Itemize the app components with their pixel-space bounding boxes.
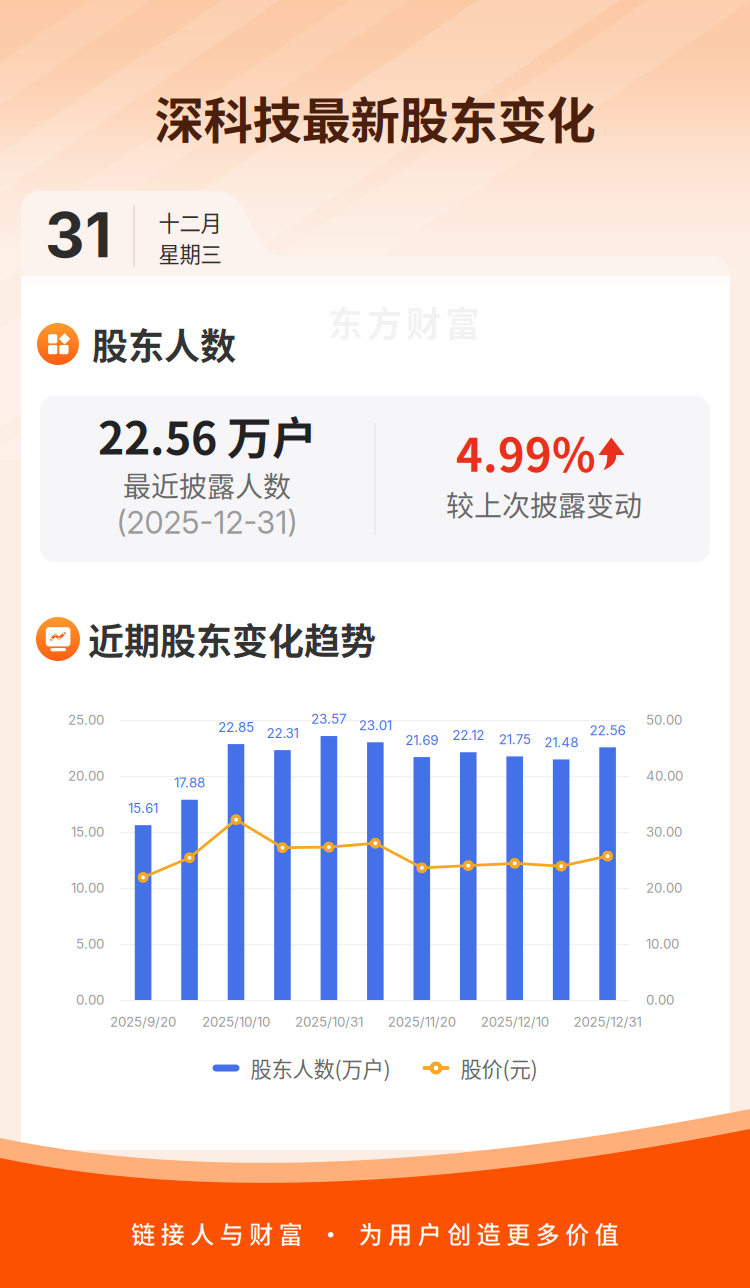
staticText: 2025/12/31 [574,1014,642,1030]
staticText: 5.00 [76,936,104,952]
staticText: 0.00 [646,992,674,1008]
staticText: 十二月 [158,207,221,237]
staticText: 15.00 [71,824,104,840]
staticText: 10.00 [71,880,104,896]
staticText: 20.00 [646,880,682,896]
staticText: 最近披露人数 [123,465,291,505]
staticText: 深科技最新股东变化 [154,81,595,153]
staticText: 17.88 [174,775,205,791]
staticText: 31 [45,198,111,272]
staticText: 22.56 [590,722,626,738]
staticText: 21.75 [499,731,531,747]
staticText: (2025-12-31) [116,504,297,541]
staticText: 15.61 [128,800,158,816]
staticText: 50.00 [646,712,682,728]
staticText: 2025/10/31 [295,1014,363,1030]
staticText: 近期股东变化趋势 [88,613,376,665]
staticText: 21.69 [405,732,438,748]
staticText: 30.00 [646,824,682,840]
staticText: 23.01 [359,717,392,733]
staticText: 10.00 [646,936,679,952]
staticText: 22.31 [266,725,298,741]
staticText: 40.00 [646,768,683,784]
staticText: 4.99% [456,419,596,485]
staticText: 2025/9/20 [110,1014,176,1030]
staticText: 星期三 [158,238,221,268]
staticText: 21.48 [544,734,578,750]
staticText: 20.00 [68,768,104,784]
staticText: 较上次披露变动 [446,484,642,524]
staticText: 东方财富 [328,297,480,347]
staticText: 22.12 [452,727,484,743]
staticText: 0.00 [76,992,104,1008]
staticText: 链接人与财富 · 为用户创造更多价值 [131,1216,619,1250]
staticText: 股价(元) [460,1053,537,1083]
staticText: 22.85 [218,719,254,735]
staticText: 股东人数 [92,318,236,370]
staticText: 2025/10/10 [202,1014,270,1030]
staticText: 23.57 [311,711,347,727]
staticText: 2025/12/10 [481,1014,549,1030]
staticText: 22.56 万户 [98,403,317,467]
staticText: 2025/11/20 [388,1014,456,1030]
staticText: 股东人数(万户) [250,1053,390,1083]
staticText: 25.00 [68,712,104,728]
